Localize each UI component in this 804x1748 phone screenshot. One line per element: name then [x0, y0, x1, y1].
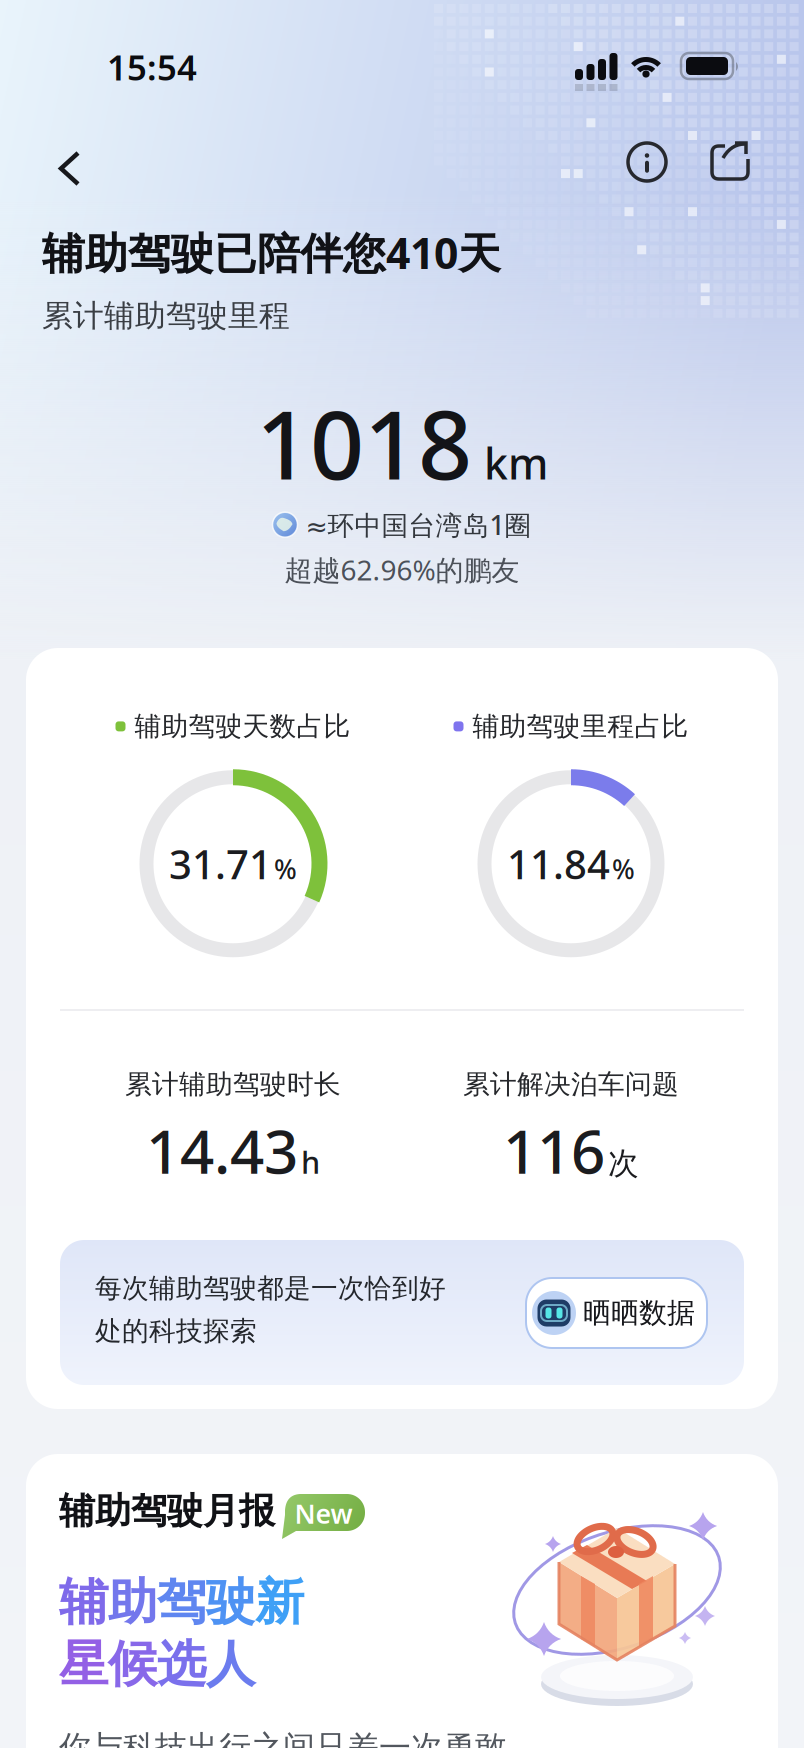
staticText: 辅助驾驶里程占比: [472, 710, 688, 743]
staticText: 处的科技探索: [95, 1315, 257, 1348]
staticText: 晒晒数据: [583, 1296, 695, 1330]
staticText: 次: [608, 1145, 639, 1182]
button[interactable]: Info: [625, 140, 669, 184]
button[interactable]: 辅助驾驶月报: [26, 1454, 778, 1748]
staticText: %: [612, 851, 635, 887]
staticText: New: [294, 1496, 352, 1531]
staticText: %: [274, 851, 297, 887]
staticText: 新: [255, 1572, 304, 1633]
staticText: 驾: [157, 1572, 206, 1633]
staticText: 选: [157, 1634, 206, 1695]
staticText: 辅助驾驶天数占比: [134, 710, 350, 743]
staticText: km: [484, 435, 548, 491]
staticText: 超越62.96%的鹏友: [284, 551, 519, 588]
staticText: 辅助驾驶已陪伴您410天: [42, 224, 501, 281]
staticText: 助: [108, 1572, 157, 1633]
staticText: 累计辅助驾驶时长: [125, 1068, 341, 1101]
staticText: 14.43: [146, 1111, 298, 1190]
staticText: 1018: [256, 380, 472, 506]
staticText: 累计解决泊车问题: [463, 1068, 679, 1101]
staticText: 候: [108, 1634, 157, 1695]
staticText: 你与科技出行之间只差一次勇敢: [59, 1728, 507, 1748]
staticText: 人: [206, 1634, 255, 1695]
staticText: 11.84: [507, 837, 610, 890]
staticText: 15:54: [107, 44, 197, 90]
staticText: 驶: [206, 1572, 255, 1633]
staticText: 116: [503, 1111, 605, 1190]
button[interactable]: Share: [710, 141, 750, 181]
button[interactable]: Back: [45, 137, 95, 200]
staticText: h: [301, 1142, 320, 1182]
staticText: 累计辅助驾驶里程: [42, 297, 290, 335]
staticText: ≈环中国台湾岛1圈: [305, 507, 531, 542]
staticText: 每次辅助驾驶都是一次恰到好: [95, 1272, 446, 1305]
button[interactable]: 晒晒数据: [526, 1278, 707, 1348]
staticText: 星: [59, 1634, 108, 1695]
staticText: 辅: [59, 1572, 108, 1633]
staticText: 31.71: [169, 837, 272, 890]
staticText: 辅助驾驶月报: [59, 1489, 275, 1533]
